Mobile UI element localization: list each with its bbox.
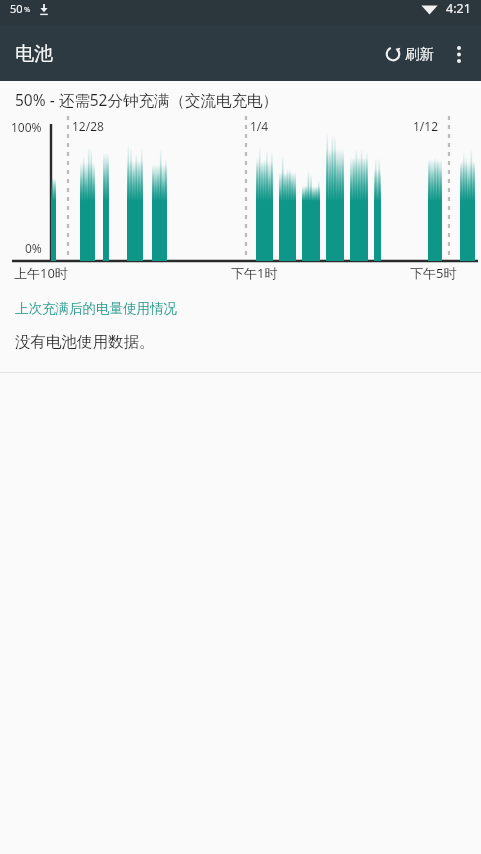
staticText: % [24,4,31,14]
staticText: 上次充满后的电量使用情况 [15,300,177,317]
staticText: 100% [11,119,42,135]
button[interactable]: More options [439,34,479,74]
staticText: 0% [25,240,42,256]
staticText: 12/28 [72,118,104,134]
button[interactable]: 上次充满后的电量使用情况 [0,298,481,319]
staticText: 电池 [15,42,53,66]
other: Refresh [384,45,402,63]
button[interactable]: Refresh [379,36,439,72]
staticText: 上午10时 [14,264,68,282]
staticText: 下午5时 [410,264,457,282]
staticText: 下午1时 [231,264,278,282]
staticText: 没有电池使用数据。 [15,332,155,352]
staticText: 50% - 还需52分钟充满（交流电充电） [15,89,278,110]
staticText: 4:21 [446,0,471,17]
staticText: 50 [10,1,23,16]
staticText: 刷新 [405,45,434,63]
staticText: 1/12 [413,118,439,134]
staticText: 1/4 [250,118,269,134]
